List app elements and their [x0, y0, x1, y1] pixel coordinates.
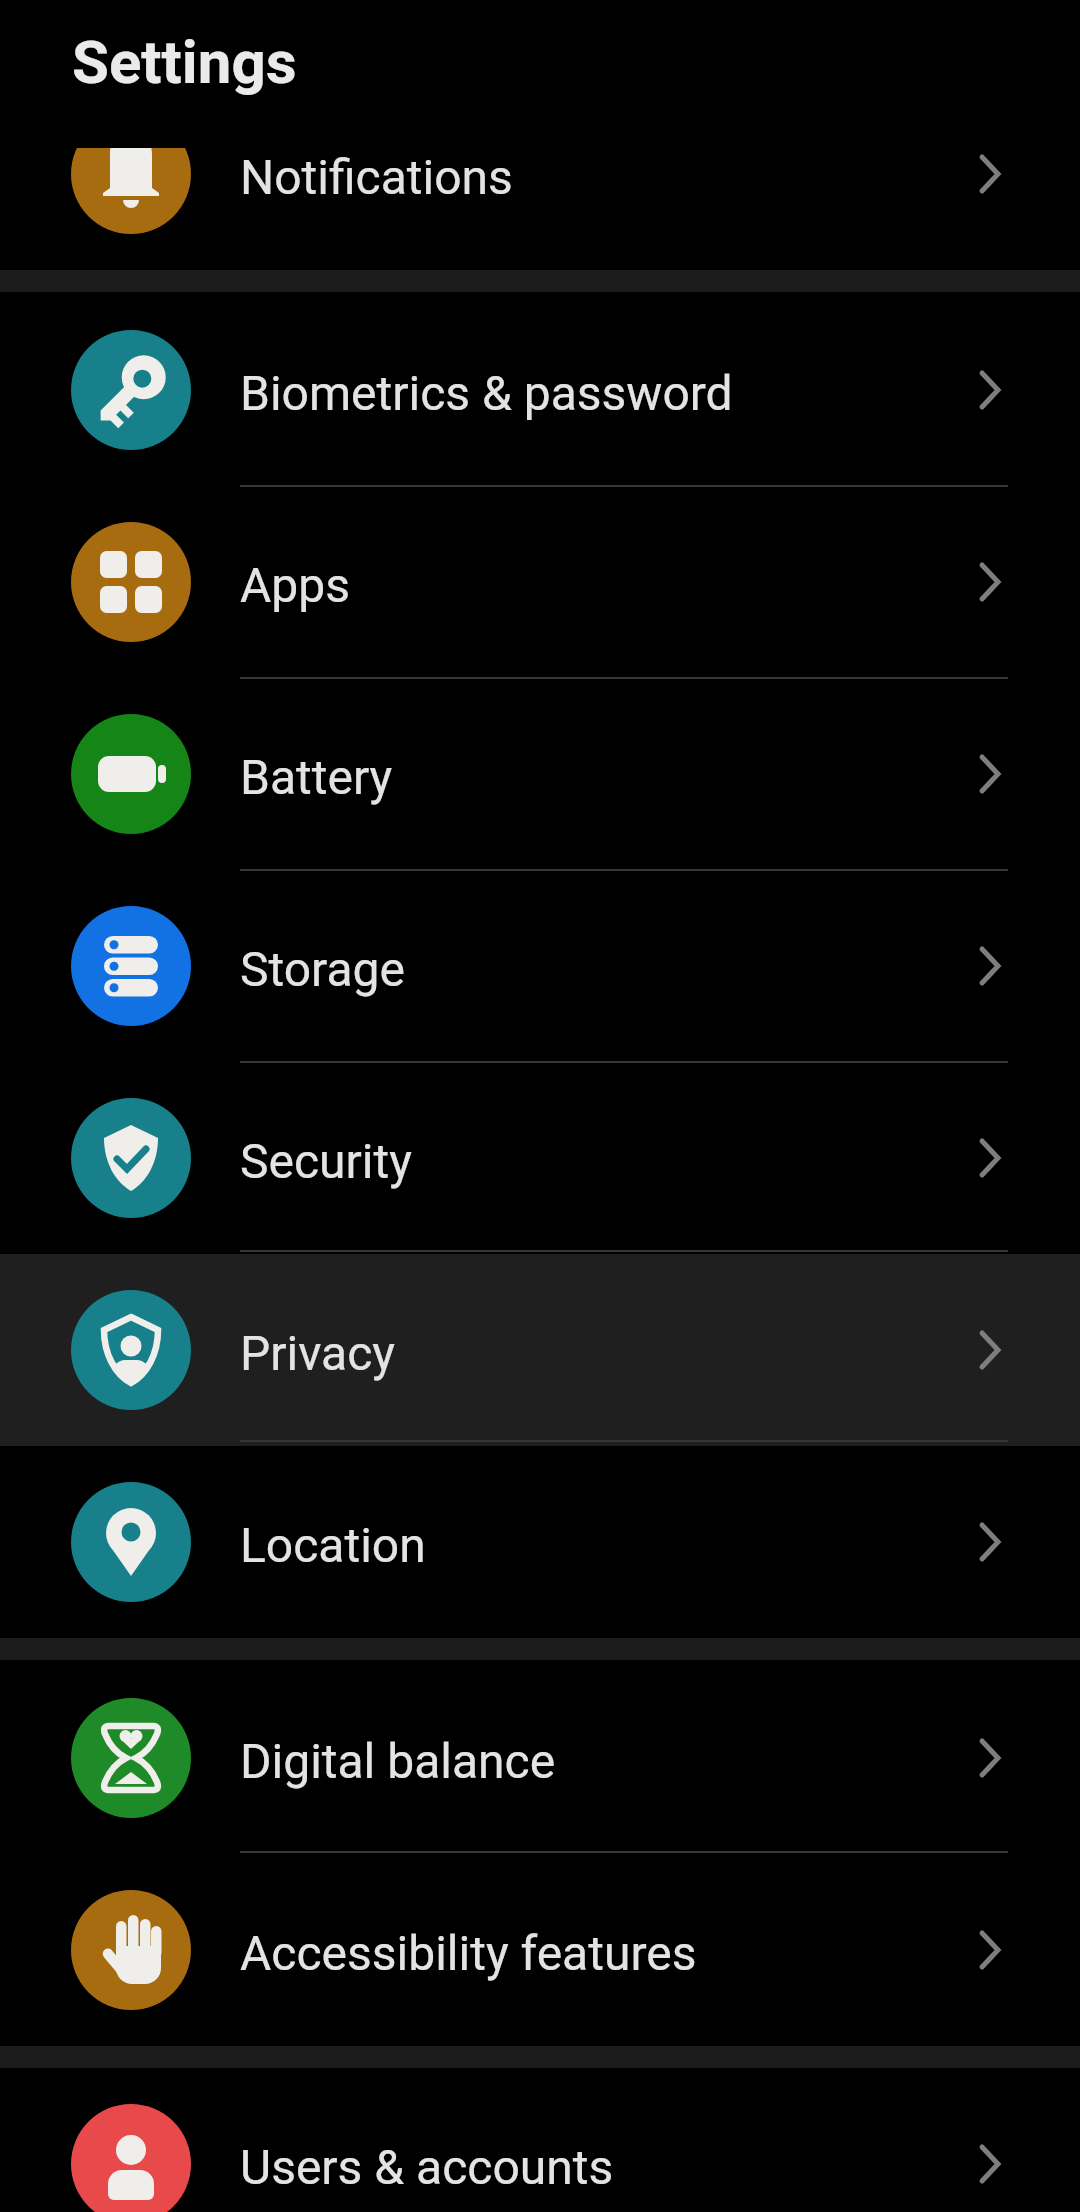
staticText: Biometrics & password — [240, 365, 733, 421]
button[interactable]: Digital balance — [0, 1662, 1080, 1854]
button[interactable]: Accessibility features — [0, 1854, 1080, 2046]
staticText: Notifications — [240, 149, 513, 205]
button[interactable]: Users & accounts — [0, 2068, 1080, 2212]
staticText: Accessibility features — [240, 1925, 697, 1981]
staticText: Battery — [240, 749, 393, 805]
staticText: Privacy — [240, 1325, 396, 1381]
staticText: Storage — [240, 941, 405, 997]
button[interactable]: Notifications — [0, 78, 1080, 270]
button[interactable]: Privacy — [0, 1254, 1080, 1446]
button[interactable]: Location — [0, 1446, 1080, 1638]
button[interactable]: Biometrics & password — [0, 294, 1080, 486]
staticText: Apps — [240, 557, 350, 613]
staticText: Digital balance — [240, 1733, 556, 1789]
staticText: Location — [240, 1517, 426, 1573]
staticText: Users & accounts — [240, 2139, 614, 2195]
button[interactable]: Storage — [0, 870, 1080, 1062]
button[interactable]: Apps — [0, 486, 1080, 678]
button[interactable]: Security — [0, 1062, 1080, 1254]
staticText: Settings — [72, 27, 297, 97]
button[interactable]: Battery — [0, 678, 1080, 870]
staticText: Security — [240, 1133, 412, 1189]
